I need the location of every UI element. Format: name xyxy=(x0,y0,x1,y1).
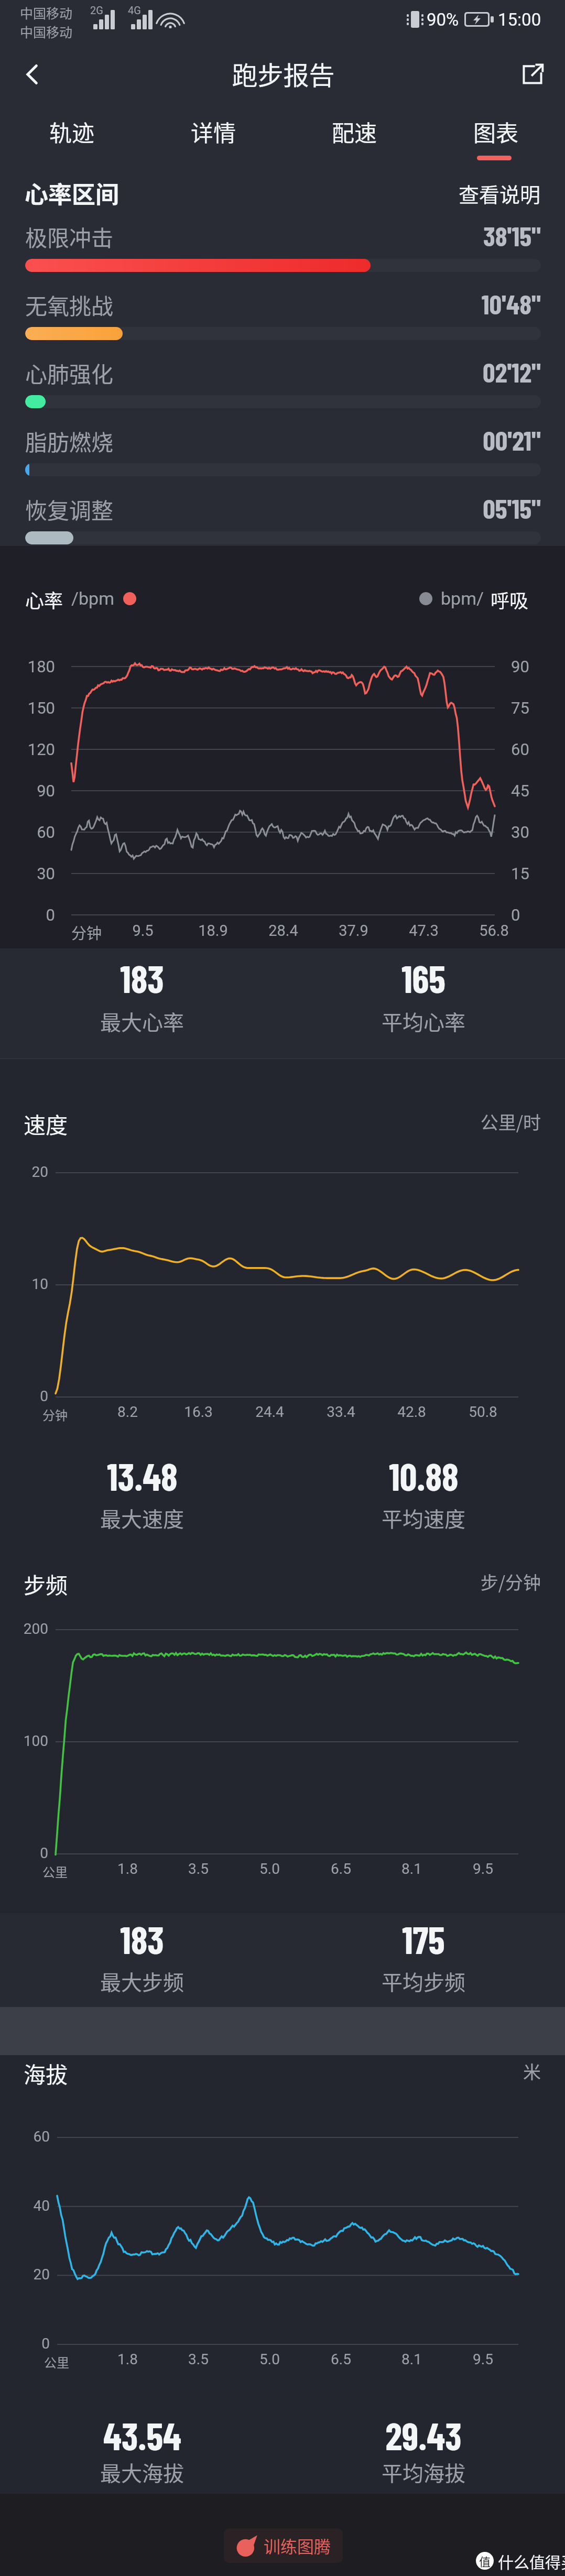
staticText: 最大海拔 xyxy=(100,2457,184,2487)
staticText: 120 xyxy=(0,740,55,759)
staticText: 跑步报告 xyxy=(232,55,335,92)
staticText: 0 xyxy=(0,905,55,924)
button[interactable]: Back xyxy=(4,46,61,103)
staticText: 200 xyxy=(0,1620,48,1638)
staticText: 16.3 xyxy=(184,1403,213,1421)
staticText: 20 xyxy=(0,1163,48,1181)
staticText: 9.5 xyxy=(473,1860,493,1878)
staticText: 75 xyxy=(511,698,563,717)
staticText: 9.5 xyxy=(132,922,154,940)
staticText: 183 xyxy=(120,1916,164,1961)
staticText: 8.1 xyxy=(401,2351,422,2368)
staticText: 心肺强化 xyxy=(25,357,114,389)
staticText: bpm/ xyxy=(441,588,484,609)
staticText: 3.5 xyxy=(188,2351,209,2368)
staticText: 6.5 xyxy=(331,1860,351,1878)
staticText: 13.48 xyxy=(107,1453,178,1498)
staticText: 18.9 xyxy=(198,922,228,940)
staticText: 平均速度 xyxy=(382,1503,465,1533)
staticText: 47.3 xyxy=(409,922,439,940)
staticText: 值 xyxy=(479,2552,491,2569)
staticText: 1.8 xyxy=(117,1860,138,1878)
staticText: 5.0 xyxy=(259,2351,280,2368)
staticText: 0 xyxy=(0,1388,48,1405)
staticText: 9.5 xyxy=(473,2351,493,2368)
staticText: 0 xyxy=(0,1844,48,1862)
staticText: 平均海拔 xyxy=(382,2457,465,2487)
staticText: 中国移动 xyxy=(20,3,73,22)
staticText: 米 xyxy=(0,2058,541,2084)
staticText: 33.4 xyxy=(327,1403,355,1421)
staticText: 60 xyxy=(0,823,55,842)
staticText: 心率 xyxy=(25,586,63,611)
staticText: 无氧挑战 xyxy=(25,289,114,321)
staticText: 训练图腾 xyxy=(264,2534,331,2558)
staticText: 10.88 xyxy=(389,1453,459,1498)
button[interactable]: Share xyxy=(504,46,561,103)
staticText: 脂肪燃烧 xyxy=(25,425,114,457)
staticText: 60 xyxy=(511,740,563,759)
button[interactable]: 配速 xyxy=(282,105,423,168)
staticText: 5.0 xyxy=(259,1860,280,1878)
staticText: 24.4 xyxy=(255,1403,284,1421)
staticText: 30 xyxy=(511,823,563,842)
staticText: 15:00 xyxy=(498,9,541,30)
staticText: 0 xyxy=(0,2335,50,2352)
staticText: 最大速度 xyxy=(100,1503,184,1533)
staticText: 极限冲击 xyxy=(25,221,114,253)
staticText: /bpm xyxy=(71,588,115,609)
staticText: 恢复调整 xyxy=(25,493,114,525)
staticText: 37.9 xyxy=(339,922,368,940)
staticText: 公里 xyxy=(42,1862,68,1881)
staticText: 45 xyxy=(511,781,563,800)
staticText: 呼吸 xyxy=(491,586,529,611)
button[interactable]: 详情 xyxy=(142,105,282,168)
staticText: 10'48" xyxy=(0,287,541,320)
staticText: 8.1 xyxy=(401,1860,422,1878)
button[interactable]: 训练图腾 xyxy=(224,2528,343,2563)
staticText: 6.5 xyxy=(331,2351,351,2368)
staticText: 183 xyxy=(120,955,164,1000)
staticText: 100 xyxy=(0,1732,48,1750)
staticText: 什么值得买 xyxy=(498,2550,565,2572)
staticText: 分钟 xyxy=(42,1405,68,1424)
staticText: 海拔 xyxy=(24,2057,68,2089)
staticText: 20 xyxy=(0,2266,50,2283)
staticText: 40 xyxy=(0,2197,50,2214)
staticText: 50.8 xyxy=(469,1403,497,1421)
staticText: 查看说明 xyxy=(459,179,541,208)
staticText: 05'15" xyxy=(0,492,541,524)
staticText: 90 xyxy=(511,657,563,676)
staticText: 42.8 xyxy=(397,1403,426,1421)
staticText: 平均心率 xyxy=(382,1006,465,1036)
staticText: 步/分钟 xyxy=(0,1569,541,1595)
staticText: 3.5 xyxy=(188,1860,209,1878)
staticText: 配速 xyxy=(332,115,377,148)
staticText: 平均步频 xyxy=(382,1966,465,1996)
staticText: 56.8 xyxy=(479,922,509,940)
staticText: 60 xyxy=(0,2128,50,2145)
staticText: 公里 xyxy=(44,2353,69,2371)
staticText: 0 xyxy=(511,905,563,924)
staticText: 步频 xyxy=(24,1568,68,1600)
staticText: 38'15" xyxy=(0,219,541,252)
staticText: 中国移动 xyxy=(20,22,73,41)
staticText: 180 xyxy=(0,657,55,676)
staticText: 8.2 xyxy=(117,1403,138,1421)
staticText: 28.4 xyxy=(268,922,298,940)
staticText: 心率区间 xyxy=(25,176,119,210)
button[interactable]: 图表 xyxy=(424,105,564,168)
staticText: 2G xyxy=(90,4,103,16)
button[interactable]: 轨迹 xyxy=(0,105,140,168)
staticText: 公里/时 xyxy=(0,1109,541,1134)
staticText: 分钟 xyxy=(71,921,102,943)
button[interactable]: 查看说明 xyxy=(459,179,541,208)
staticText: 150 xyxy=(0,698,55,717)
staticText: 详情 xyxy=(191,115,236,148)
staticText: 02'12" xyxy=(0,355,541,388)
staticText: 1.8 xyxy=(117,2351,138,2368)
staticText: 175 xyxy=(402,1916,445,1961)
staticText: 165 xyxy=(401,955,446,1000)
staticText: 00'21" xyxy=(0,423,541,456)
staticText: 速度 xyxy=(24,1108,68,1140)
